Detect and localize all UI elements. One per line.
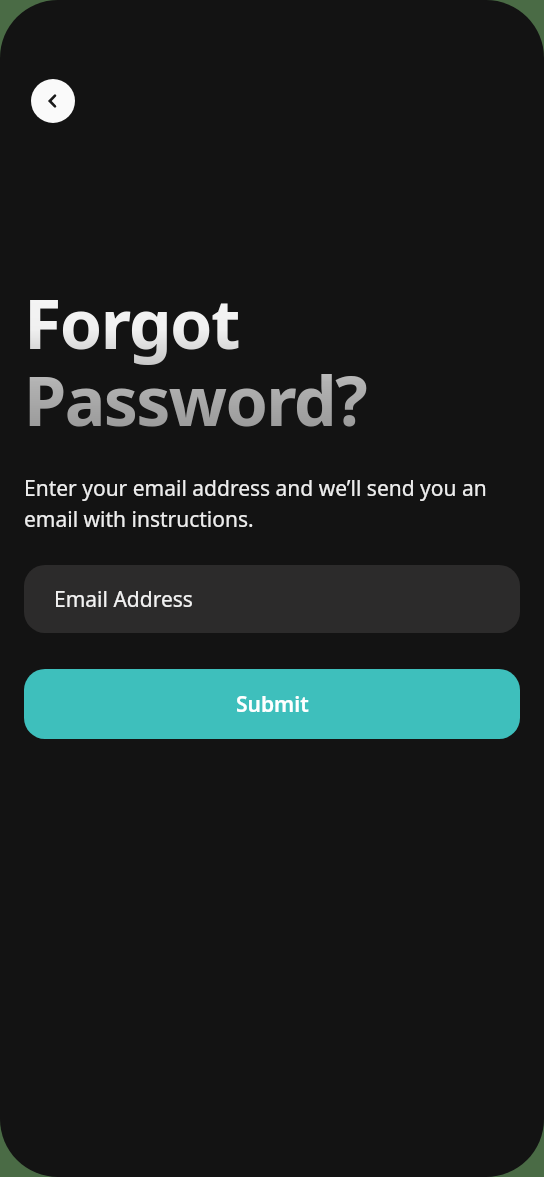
staticText: Email Address <box>54 585 193 614</box>
staticText: Enter your email address and we’ll send … <box>24 474 520 533</box>
staticText: Forgot Password? <box>24 276 366 446</box>
button[interactable]: Email Address <box>24 565 520 633</box>
button[interactable]: Submit <box>24 669 520 739</box>
button[interactable]: Back <box>31 79 75 123</box>
staticText: Submit <box>236 690 309 719</box>
